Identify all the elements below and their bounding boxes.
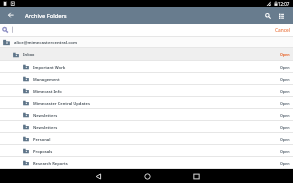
button[interactable]: Proposals [0, 145, 293, 157]
button[interactable]: Management [0, 73, 293, 85]
staticText: Open [280, 101, 290, 106]
staticText: Open [280, 52, 290, 57]
staticText: Open [280, 149, 290, 154]
button[interactable]: Open [277, 135, 293, 144]
staticText: Open [280, 137, 290, 142]
staticText: Research Reports [33, 161, 68, 166]
button[interactable]: Important Work [0, 61, 293, 73]
staticText: alice@mimecastercentral.com [14, 40, 78, 46]
button[interactable]: Mimecast Info [0, 85, 293, 97]
button[interactable]: Newsletters [0, 109, 293, 121]
staticText: Archive Folders [25, 12, 67, 20]
staticText: Proposals [33, 149, 53, 154]
staticText: 12:07 [278, 1, 290, 7]
staticText: Mimecast Info [33, 89, 62, 94]
staticText: Mimecaster Central Updates [33, 101, 90, 106]
button[interactable]: Research Reports [0, 157, 293, 169]
button[interactable]: Open [277, 75, 293, 84]
button[interactable]: Open [277, 87, 293, 96]
staticText: Inbox [23, 52, 35, 57]
button[interactable]: Back [3, 7, 19, 23]
button[interactable]: Back [89, 169, 107, 183]
staticText: Newsletters [33, 113, 58, 118]
staticText: Open [280, 65, 290, 70]
staticText: Open [280, 77, 290, 82]
button[interactable]: Open [277, 99, 293, 108]
staticText: Open [280, 113, 290, 118]
button[interactable]: Mimecaster Central Updates [0, 97, 293, 109]
staticText: Newsletters [33, 125, 58, 130]
button[interactable]: Open [277, 159, 293, 168]
staticText: Open [280, 125, 290, 130]
button[interactable]: Open [277, 50, 293, 59]
staticText: Open [280, 161, 290, 166]
staticText: Cancel [275, 27, 290, 34]
button[interactable]: alice@mimecastercentral.com [0, 37, 293, 48]
staticText: Personal [33, 137, 51, 142]
staticText: Management [33, 77, 60, 82]
button[interactable]: Open [277, 111, 293, 120]
button[interactable]: Search [261, 7, 275, 24]
button[interactable]: Open [277, 123, 293, 132]
button[interactable]: Cancel [272, 25, 293, 36]
button[interactable]: Inbox [0, 48, 293, 61]
button[interactable]: Newsletters [0, 121, 293, 133]
staticText: Important Work [33, 65, 66, 70]
button[interactable]: Recent apps [187, 169, 205, 183]
staticText: Open [280, 89, 290, 94]
button[interactable]: Open [277, 63, 293, 72]
button[interactable]: Home [138, 169, 156, 183]
button[interactable]: Menu [274, 7, 289, 24]
button[interactable]: Personal [0, 133, 293, 145]
button[interactable]: Open [277, 147, 293, 156]
